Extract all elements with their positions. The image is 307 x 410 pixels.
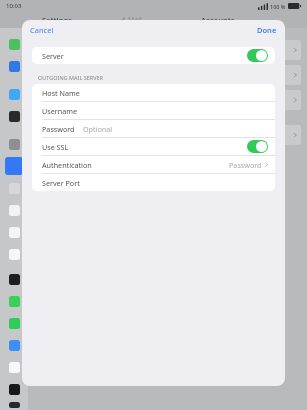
button[interactable]: App icon [5, 358, 23, 376]
button[interactable]: Toggle [247, 140, 268, 153]
button[interactable] [34, 125, 301, 145]
staticText: Password [229, 160, 262, 170]
button[interactable]: App icon [5, 314, 23, 332]
staticText: Server Port [42, 178, 80, 188]
button[interactable]: App icon [5, 135, 23, 153]
staticText: 10:03 [6, 2, 22, 10]
staticText: Optional [83, 124, 113, 134]
button[interactable]: App icon [5, 57, 23, 75]
button[interactable]: Authentication [32, 156, 275, 173]
staticText: Cancel [30, 25, 54, 35]
staticText: Authentication [42, 160, 92, 170]
staticText: OUTGOING MAIL SERVER [38, 74, 103, 81]
staticText: Server [42, 51, 64, 61]
staticText: Done [257, 25, 277, 35]
button[interactable]: Password [32, 120, 275, 137]
button[interactable]: App icon [5, 270, 23, 288]
button[interactable]: App icon [5, 336, 23, 354]
button[interactable]: Toggle [247, 49, 268, 62]
staticText: Host Name [42, 88, 80, 98]
button[interactable] [34, 90, 301, 110]
button[interactable] [34, 65, 301, 85]
button[interactable]: Server Port [32, 174, 275, 191]
button[interactable]: Host Name [32, 84, 275, 101]
button[interactable]: App icon [5, 402, 23, 408]
button[interactable]: Done [257, 25, 277, 35]
button[interactable]: App icon [5, 223, 23, 241]
button[interactable]: App icon [5, 179, 23, 197]
staticText: Accounts [201, 15, 235, 25]
button[interactable]: Use SSL [32, 138, 275, 155]
button[interactable]: Cancel [30, 25, 54, 35]
button[interactable]: Username [32, 102, 275, 119]
staticText: Mail [128, 15, 142, 25]
button[interactable]: App icon [5, 157, 23, 175]
button[interactable]: App icon [5, 35, 23, 53]
staticText: Password [42, 124, 75, 134]
staticText: Settings [42, 15, 72, 25]
button[interactable]: Server [32, 47, 275, 64]
button[interactable]: Back to Mail [121, 15, 142, 25]
staticText: Use SSL [42, 142, 69, 152]
button[interactable]: App icon [5, 292, 23, 310]
button[interactable] [34, 40, 301, 60]
button[interactable]: App icon [5, 107, 23, 125]
button[interactable]: App icon [5, 380, 23, 398]
button[interactable]: App icon [5, 201, 23, 219]
button[interactable]: App icon [5, 245, 23, 263]
button[interactable]: App icon [5, 85, 23, 103]
staticText: 100 % [270, 3, 286, 10]
staticText: Username [42, 106, 77, 116]
